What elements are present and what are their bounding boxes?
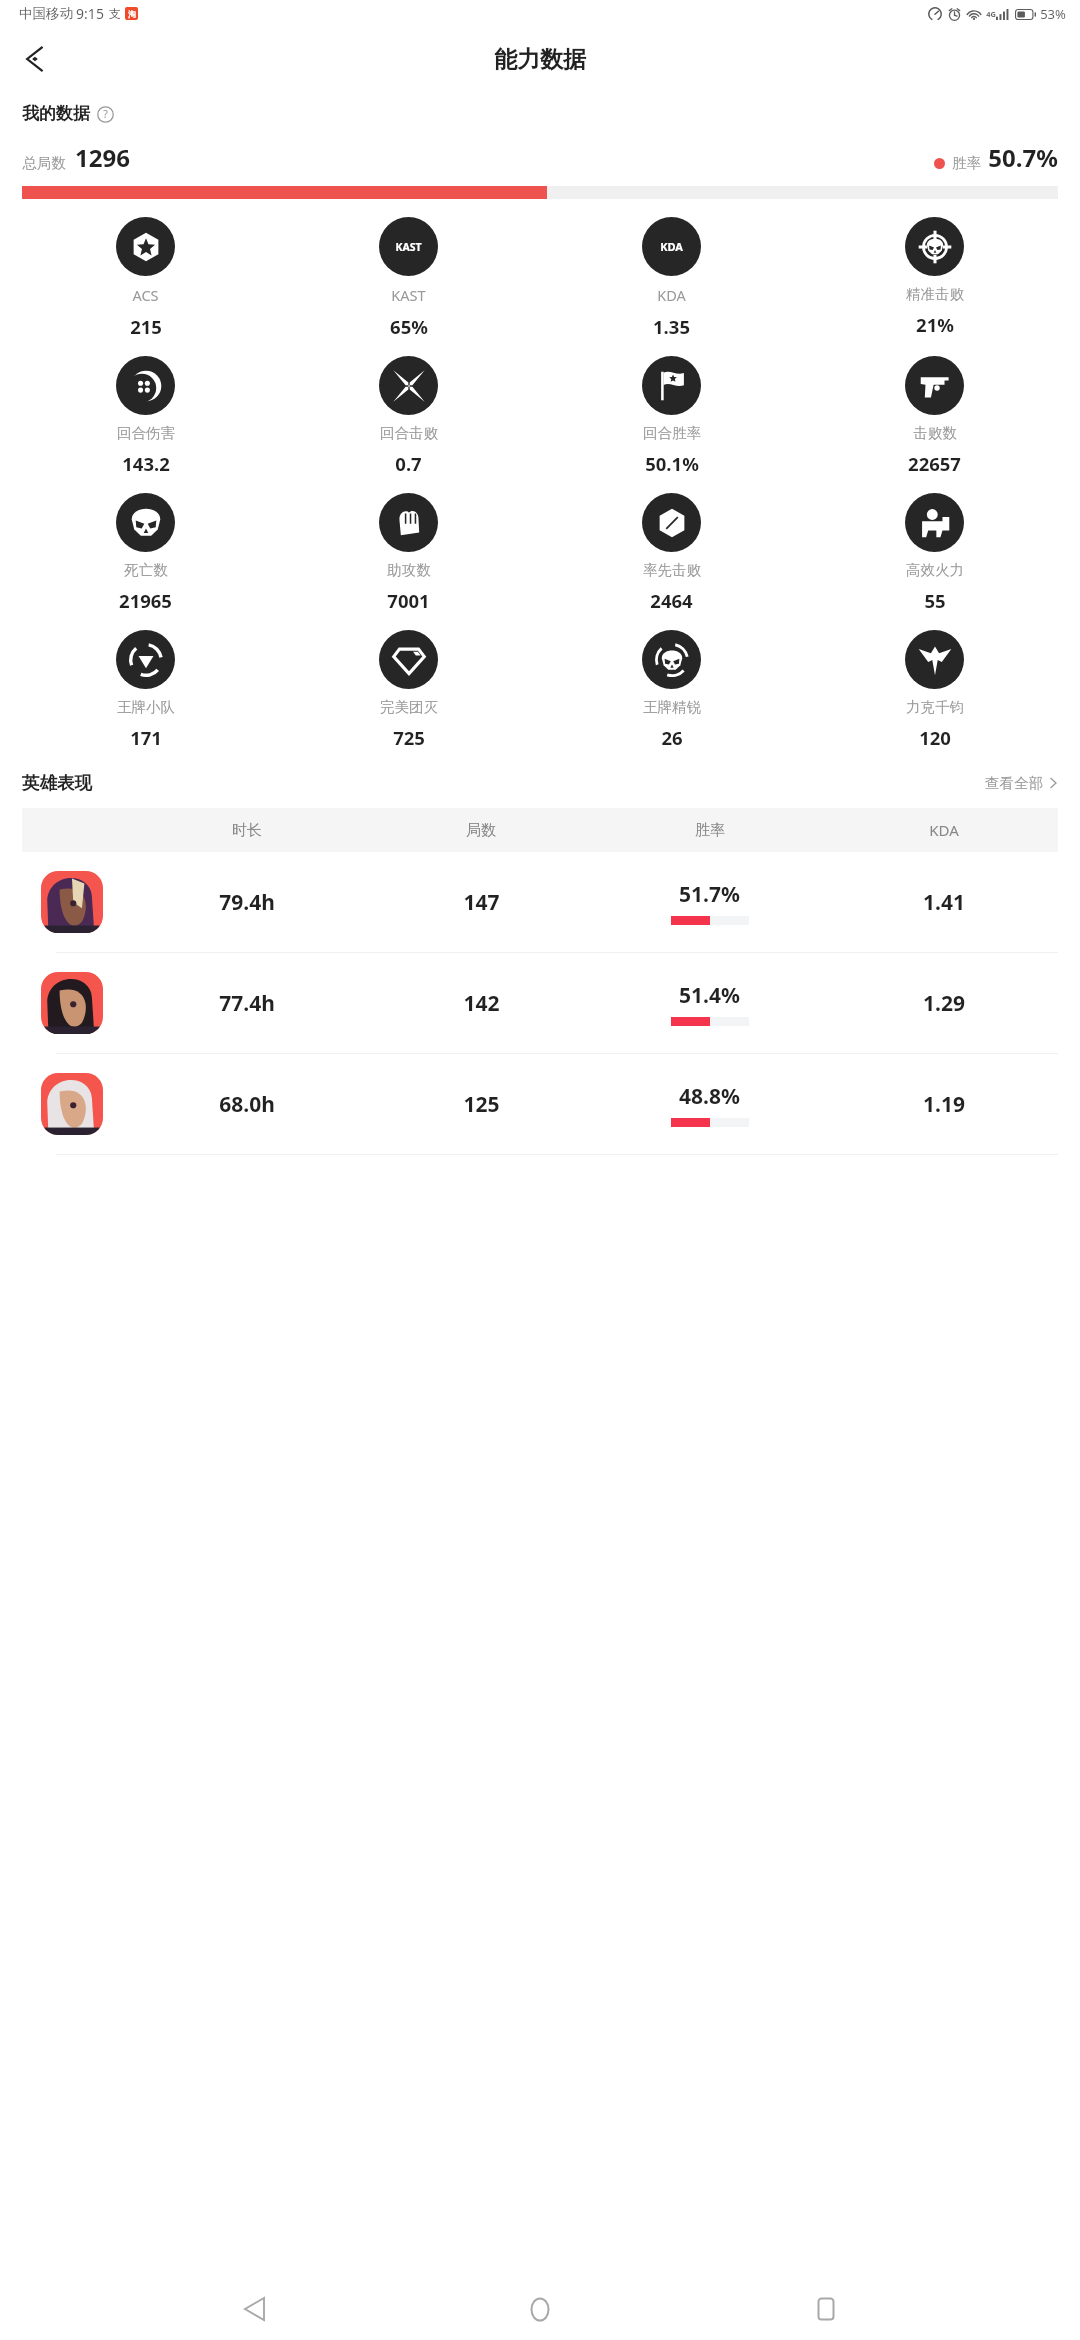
- staticText: 击败数: [913, 424, 957, 442]
- staticText: 26: [661, 725, 683, 750]
- staticText: 回合胜率: [643, 424, 701, 442]
- staticText: 支: [109, 6, 121, 21]
- button[interactable]: 王牌小队: [14, 628, 277, 752]
- staticText: 51.7%: [679, 880, 740, 909]
- button[interactable]: KDA: [540, 215, 803, 341]
- staticText: 1296: [75, 141, 130, 174]
- staticText: 79.4h: [219, 888, 275, 917]
- button[interactable]: 79.4h: [22, 852, 1058, 953]
- staticText: 回合击败: [380, 424, 438, 442]
- button[interactable]: 力克千钧: [803, 628, 1066, 752]
- staticText: 胜率: [695, 821, 725, 840]
- staticText: 查看全部: [985, 774, 1043, 792]
- staticText: 助攻数: [387, 561, 431, 579]
- staticText: KAST: [395, 240, 422, 254]
- staticText: 21965: [119, 588, 172, 613]
- staticText: 4G: [986, 9, 996, 19]
- staticText: KAST: [391, 285, 426, 305]
- staticText: 我的数据: [22, 103, 90, 124]
- button[interactable]: Back: [10, 33, 62, 85]
- staticText: 215: [130, 314, 162, 339]
- button[interactable]: 英雄表现: [22, 772, 1058, 794]
- staticText: 48.8%: [679, 1082, 740, 1111]
- button[interactable]: 击败数: [803, 354, 1066, 478]
- staticText: 120: [919, 725, 951, 750]
- button[interactable]: KAST: [277, 215, 540, 341]
- button[interactable]: 助攻数: [277, 491, 540, 615]
- staticText: KDA: [657, 285, 686, 305]
- staticText: 率先击败: [643, 561, 701, 579]
- button[interactable]: Help: [96, 105, 114, 123]
- staticText: 1.41: [923, 888, 965, 917]
- button[interactable]: Recents: [794, 2278, 858, 2340]
- staticText: 171: [130, 725, 162, 750]
- staticText: 125: [463, 1090, 500, 1119]
- staticText: ACS: [132, 285, 159, 305]
- button[interactable]: 回合胜率: [540, 354, 803, 478]
- button[interactable]: 率先击败: [540, 491, 803, 615]
- button[interactable]: ACS: [14, 215, 277, 341]
- staticText: 王牌小队: [117, 698, 175, 716]
- staticText: 中国移动: [19, 5, 73, 22]
- staticText: 死亡数: [124, 561, 168, 579]
- button[interactable]: 王牌精锐: [540, 628, 803, 752]
- staticText: 精准击败: [906, 285, 964, 303]
- staticText: 65%: [390, 314, 428, 339]
- button[interactable]: 高效火力: [803, 491, 1066, 615]
- button[interactable]: Home: [508, 2278, 572, 2340]
- staticText: 50.7%: [988, 141, 1058, 174]
- staticText: 21%: [916, 312, 954, 337]
- button[interactable]: 77.4h: [22, 953, 1058, 1054]
- staticText: 55: [924, 588, 946, 613]
- staticText: 53%: [1040, 5, 1066, 23]
- staticText: 1.29: [923, 989, 965, 1018]
- staticText: 能力数据: [494, 45, 586, 74]
- button[interactable]: 完美团灭: [277, 628, 540, 752]
- staticText: 力克千钧: [906, 698, 964, 716]
- button[interactable]: 回合击败: [277, 354, 540, 478]
- staticText: 68.0h: [219, 1090, 275, 1119]
- staticText: ?: [103, 107, 108, 121]
- staticText: 完美团灭: [380, 698, 438, 716]
- staticText: 142: [463, 989, 500, 1018]
- staticText: 1.35: [653, 314, 690, 339]
- staticText: 50.1%: [645, 451, 699, 476]
- staticText: 英雄表现: [22, 772, 92, 794]
- staticText: 1.19: [923, 1090, 965, 1119]
- button[interactable]: 回合伤害: [14, 354, 277, 478]
- staticText: 77.4h: [219, 989, 275, 1018]
- staticText: 总局数: [22, 154, 66, 172]
- button[interactable]: Back: [222, 2278, 286, 2340]
- staticText: 时长: [232, 821, 262, 840]
- staticText: 王牌精锐: [643, 698, 701, 716]
- staticText: 7001: [387, 588, 430, 613]
- button[interactable]: 精准击败: [803, 215, 1066, 339]
- button[interactable]: 死亡数: [14, 491, 277, 615]
- staticText: 51.4%: [679, 981, 740, 1010]
- staticText: 725: [393, 725, 425, 750]
- staticText: 局数: [466, 821, 496, 840]
- staticText: 淘: [128, 9, 136, 19]
- staticText: 22657: [908, 451, 961, 476]
- button[interactable]: 68.0h: [22, 1054, 1058, 1155]
- staticText: 胜率: [952, 154, 981, 172]
- staticText: 143.2: [122, 451, 170, 476]
- staticText: 0.7: [395, 451, 422, 476]
- staticText: 9:15: [76, 4, 104, 23]
- staticText: 高效火力: [906, 561, 964, 579]
- staticText: 147: [463, 888, 500, 917]
- staticText: KDA: [929, 820, 959, 840]
- staticText: 2464: [650, 588, 693, 613]
- staticText: KDA: [660, 239, 683, 254]
- staticText: 回合伤害: [117, 424, 175, 442]
